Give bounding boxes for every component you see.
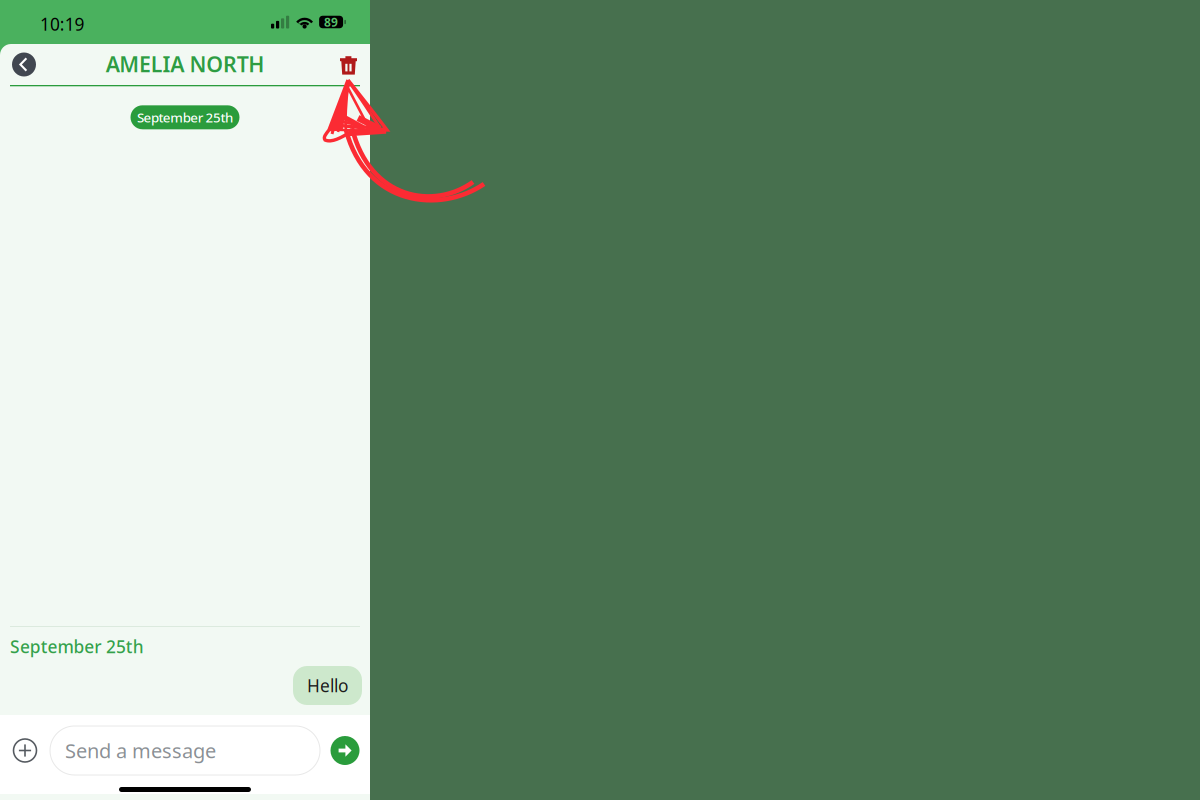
button[interactable]: Send xyxy=(320,726,370,775)
staticText: AMELIA NORTH xyxy=(106,50,264,78)
staticText: September 25th xyxy=(137,108,233,126)
button[interactable]: Send a message xyxy=(50,726,320,775)
staticText: September 25th xyxy=(10,635,144,658)
button[interactable]: Back xyxy=(0,44,48,85)
staticText: 89 xyxy=(324,14,338,30)
staticText: Hello xyxy=(307,674,348,697)
staticText: 10:19 xyxy=(40,12,85,35)
button[interactable]: Add attachment xyxy=(0,726,50,775)
staticText: Send a message xyxy=(65,737,216,764)
button[interactable]: Delete conversation xyxy=(322,44,370,85)
